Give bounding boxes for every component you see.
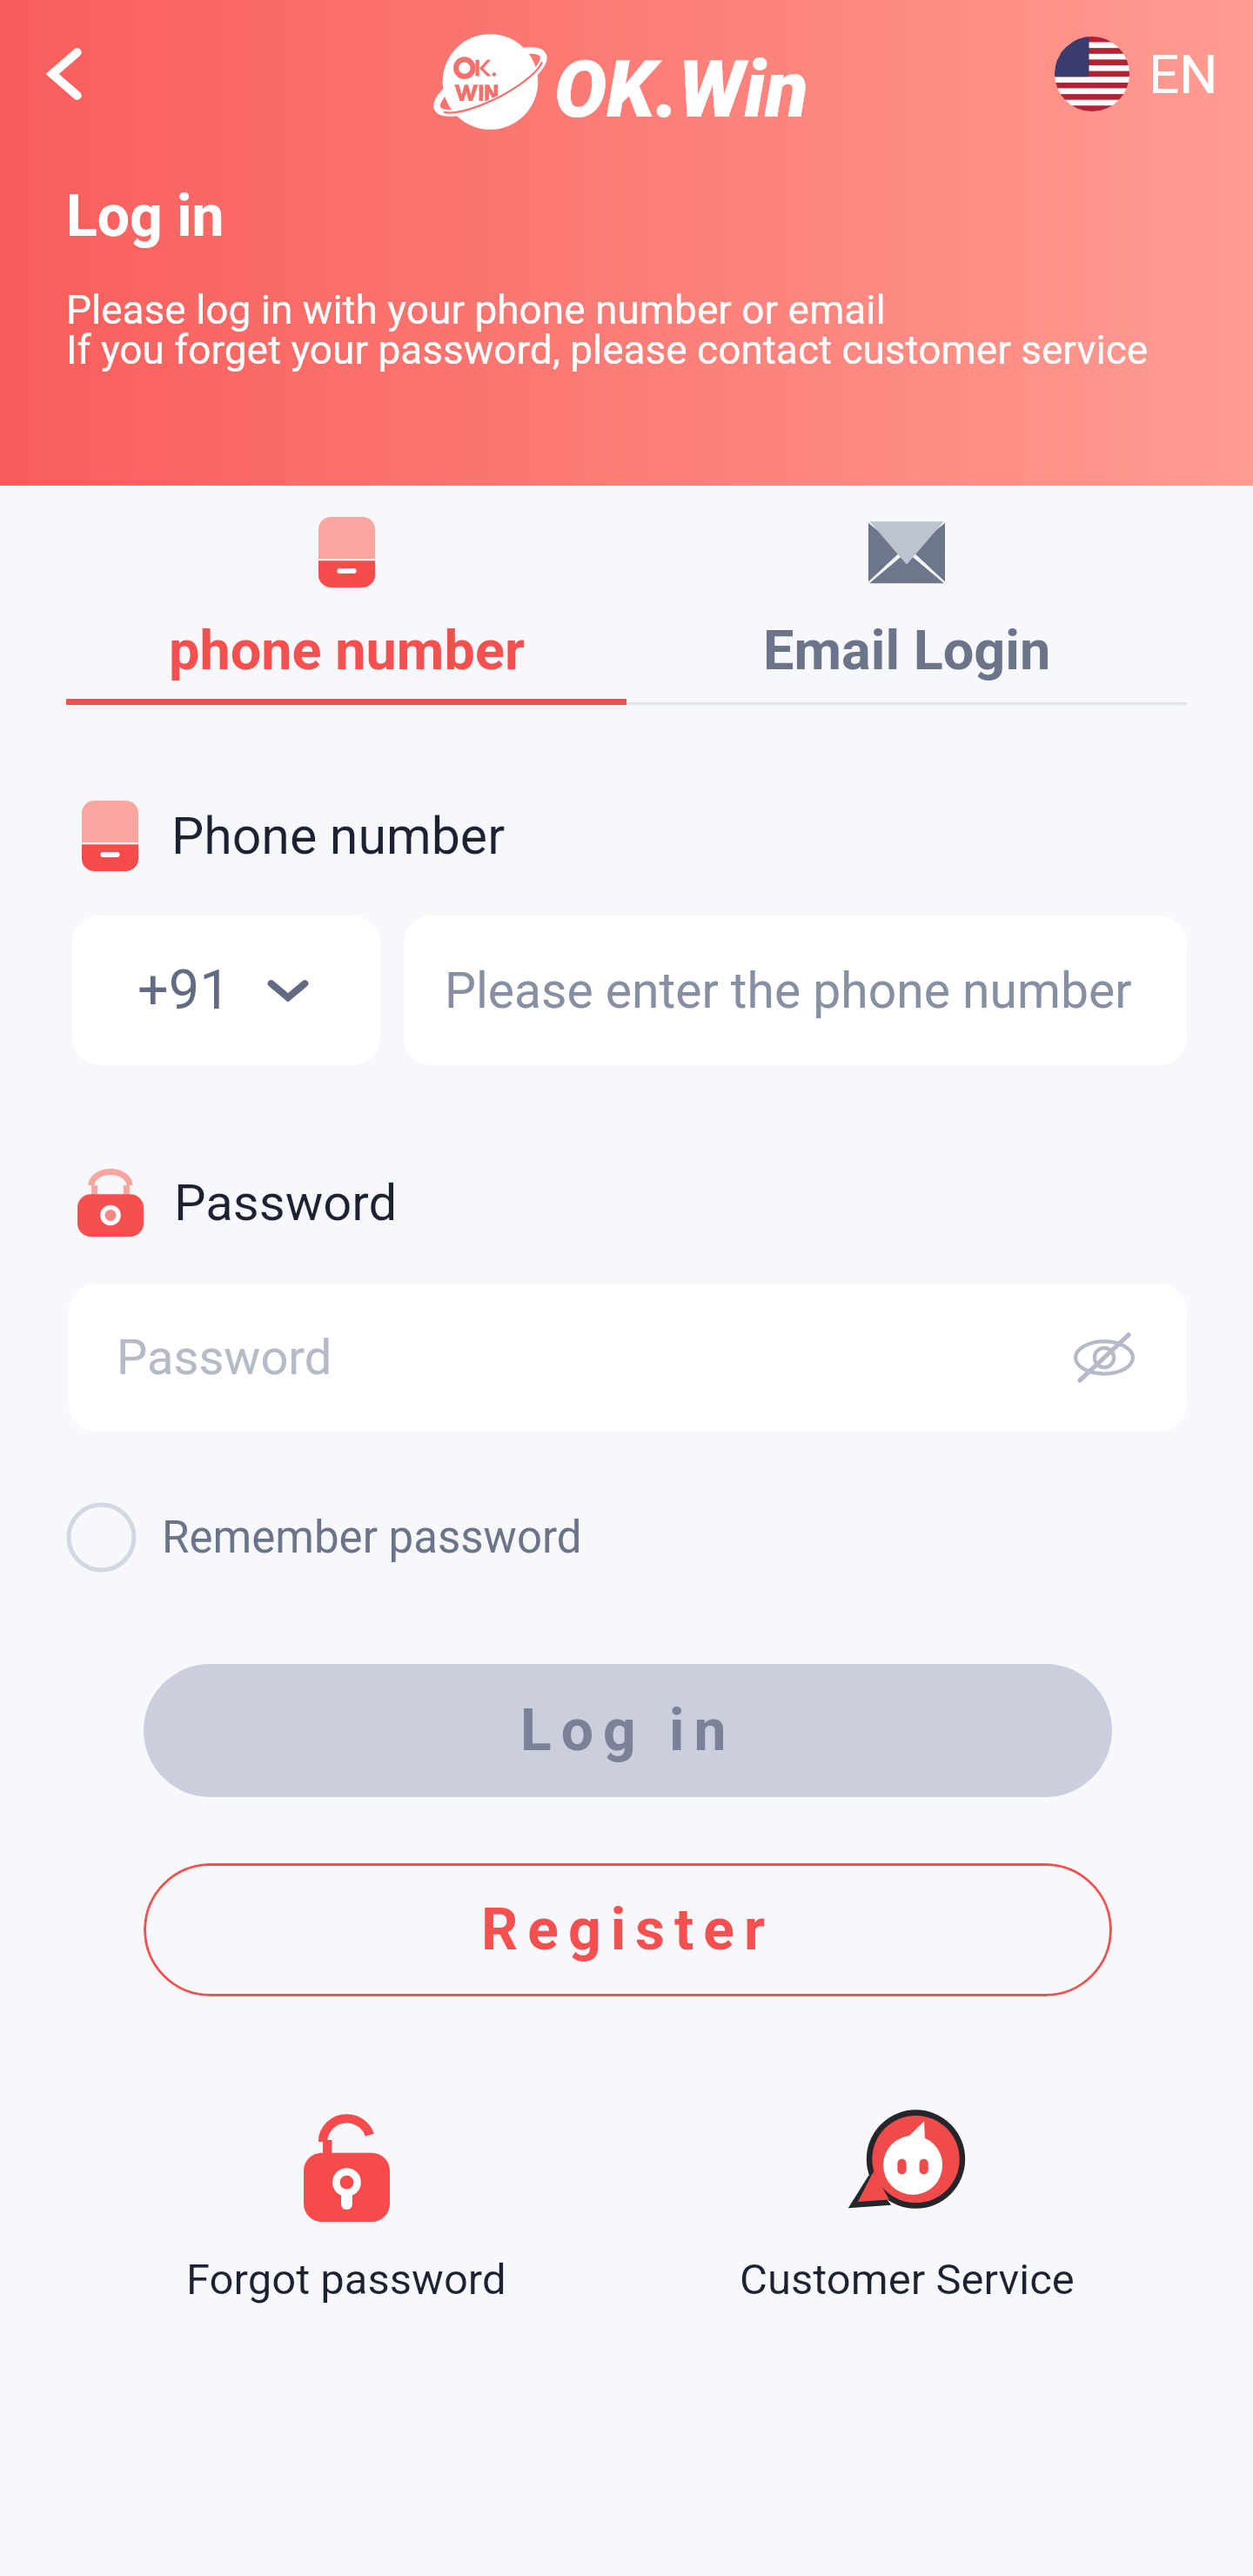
- staticText: phone number: [169, 619, 525, 683]
- staticText: Email Login: [763, 619, 1051, 683]
- button[interactable]: Log in: [144, 1664, 1112, 1797]
- button[interactable]: Language EN: [1055, 37, 1218, 111]
- staticText: Phone number: [171, 806, 506, 866]
- staticText: Password: [117, 1329, 332, 1386]
- button[interactable]: Forgot password: [66, 2107, 626, 2304]
- button[interactable]: phone number: [66, 517, 626, 683]
- staticText: Please enter the phone number: [445, 962, 1132, 1020]
- staticText: Customer Service: [740, 2255, 1075, 2304]
- staticText: Log in: [66, 183, 224, 250]
- button[interactable]: Password: [69, 1284, 1187, 1432]
- staticText: OK.Win: [554, 44, 808, 136]
- button[interactable]: +91: [72, 916, 380, 1065]
- button[interactable]: Customer Service: [626, 2107, 1187, 2304]
- staticText: EN: [1149, 43, 1218, 106]
- staticText: Password: [174, 1173, 398, 1232]
- button[interactable]: Back: [17, 26, 113, 122]
- button[interactable]: Remember password: [66, 1502, 582, 1573]
- staticText: Please log in with your phone number or …: [66, 286, 1149, 373]
- button[interactable]: Email Login: [626, 517, 1187, 683]
- staticText: Remember password: [162, 1512, 582, 1564]
- button[interactable]: Show password: [1069, 1323, 1139, 1392]
- staticText: Forgot password: [186, 2255, 506, 2304]
- button[interactable]: Register: [144, 1863, 1112, 1996]
- staticText: Register: [481, 1896, 775, 1963]
- button[interactable]: Please enter the phone number: [404, 916, 1187, 1065]
- staticText: Log in: [520, 1697, 736, 1764]
- staticText: +91: [137, 958, 231, 1023]
